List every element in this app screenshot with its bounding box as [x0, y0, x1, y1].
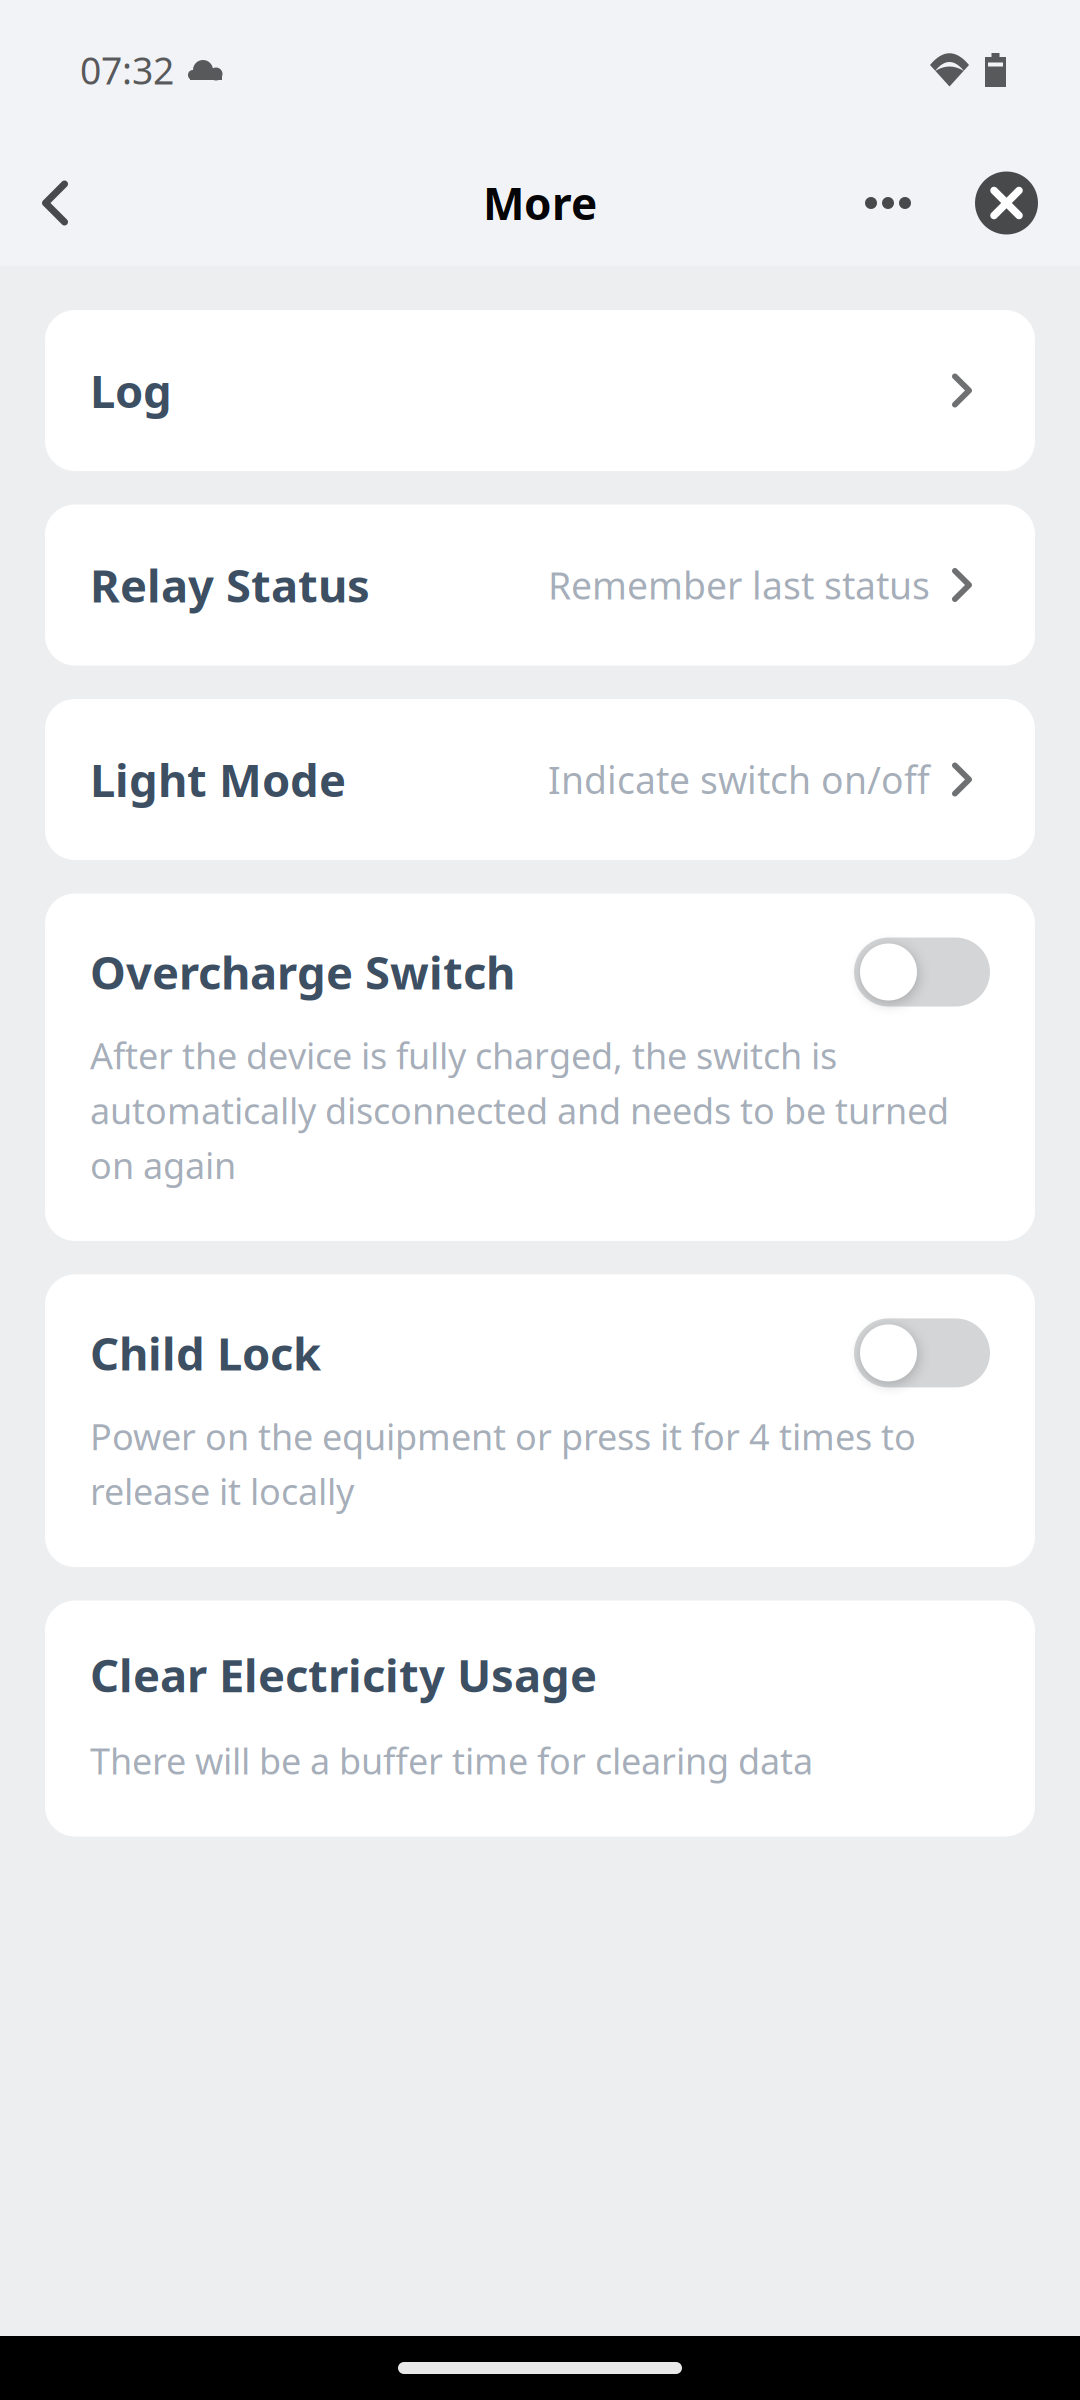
- button[interactable]: Back: [0, 140, 102, 266]
- button[interactable]: Close: [975, 140, 1080, 266]
- button[interactable]: Clear Electricity Usage: [45, 1600, 1035, 1836]
- staticText: Indicate switch on/off: [548, 755, 930, 804]
- button[interactable]: Log: [45, 310, 1035, 471]
- staticText: Log: [90, 360, 172, 421]
- staticText: More: [483, 174, 597, 232]
- staticText: After the device is fully charged, the s…: [90, 1031, 949, 1189]
- button[interactable]: Child Lock: [854, 1318, 990, 1387]
- staticText: Light Mode: [90, 749, 346, 810]
- staticText: Child Lock: [90, 1323, 321, 1383]
- staticText: Remember last status: [548, 560, 930, 610]
- button[interactable]: More options: [839, 140, 937, 266]
- button[interactable]: Relay Status: [45, 504, 1035, 665]
- staticText: Relay Status: [90, 555, 370, 615]
- staticText: Power on the equipment or press it for 4…: [90, 1412, 916, 1515]
- button[interactable]: Light Mode: [45, 699, 1035, 860]
- button[interactable]: Overcharge Switch: [854, 937, 990, 1006]
- staticText: 07:32: [80, 45, 174, 95]
- staticText: Overcharge Switch: [90, 942, 515, 1002]
- staticText: There will be a buffer time for clearing…: [90, 1737, 813, 1784]
- staticText: Clear Electricity Usage: [90, 1644, 597, 1705]
